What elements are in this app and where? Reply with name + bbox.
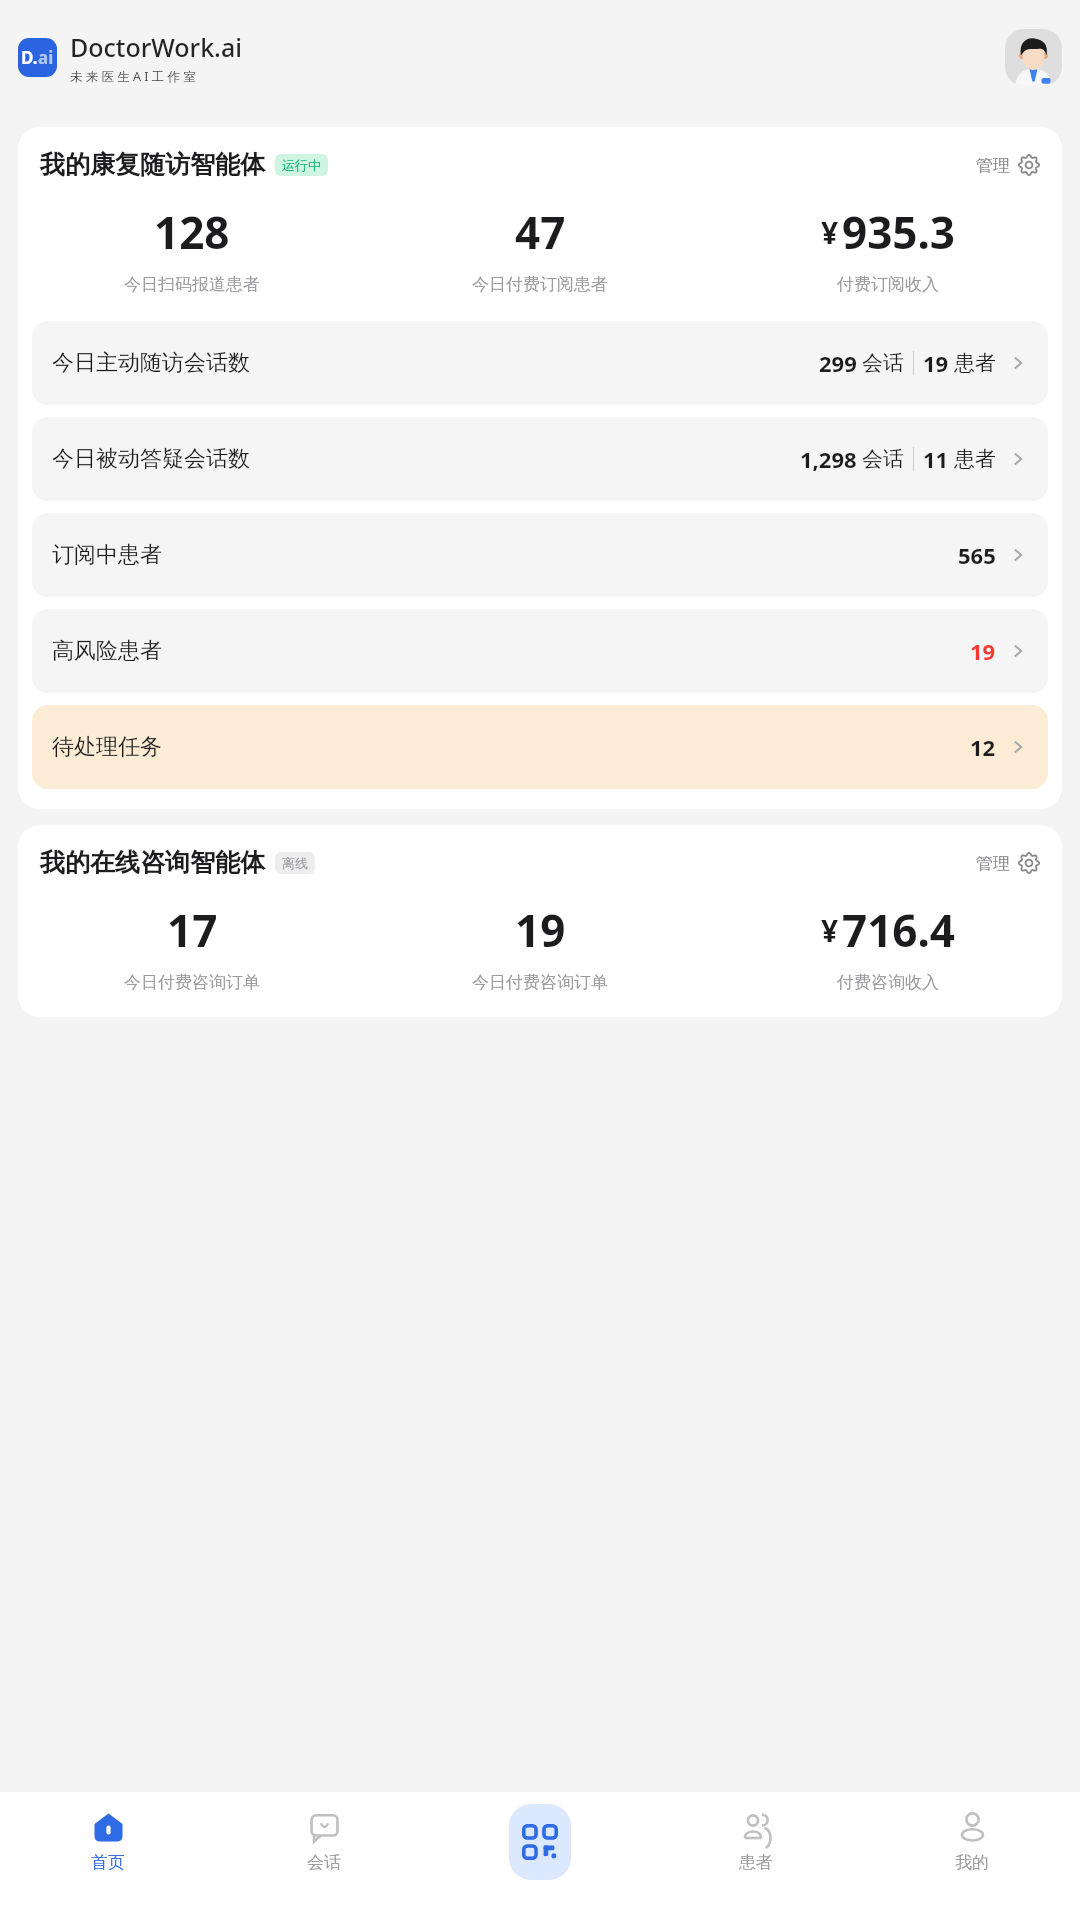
staticText: 19 xyxy=(515,900,566,960)
staticText: 待处理任务 xyxy=(52,733,162,761)
button[interactable]: 待处理任务 xyxy=(32,705,1048,789)
staticText: 我的在线咨询智能体 xyxy=(40,847,265,878)
staticText: 运行中 xyxy=(282,157,321,173)
staticText: 今日主动随访会话数 xyxy=(52,349,250,377)
staticText: 今日付费订阅患者 xyxy=(472,274,608,295)
staticText: 11 xyxy=(923,444,949,474)
staticText: DoctorWork.ai xyxy=(70,30,242,64)
button[interactable]: 今日主动随访会话数 xyxy=(32,321,1048,405)
staticText: 今日付费咨询订单 xyxy=(472,972,608,993)
staticText: 管理 xyxy=(976,155,1010,176)
staticText: 128 xyxy=(154,202,230,262)
staticText: ¥ xyxy=(821,910,839,951)
button[interactable]: 我的 xyxy=(864,1804,1080,1920)
staticText: 299 xyxy=(819,348,857,378)
staticText: 患者 xyxy=(739,1852,773,1873)
staticText: 会话 xyxy=(862,350,904,376)
staticText: 付费订阅收入 xyxy=(837,274,939,295)
staticText: 935.3 xyxy=(842,202,956,262)
staticText: 12 xyxy=(970,732,996,762)
button[interactable]: 管理 xyxy=(976,852,1040,874)
staticText: D. xyxy=(21,46,38,69)
staticText: 我的康复随访智能体 xyxy=(40,149,265,180)
staticText: 今日付费咨询订单 xyxy=(124,972,260,993)
staticText: 未 来 医 生 A I 工 作 室 xyxy=(70,68,196,85)
staticText: 716.4 xyxy=(842,900,956,960)
staticText: 今日被动答疑会话数 xyxy=(52,445,250,473)
staticText: 患者 xyxy=(954,446,996,472)
staticText: 会话 xyxy=(862,446,904,472)
staticText: 今日扫码报道患者 xyxy=(124,274,260,295)
button[interactable]: 首页 xyxy=(0,1804,216,1920)
staticText: 首页 xyxy=(91,1852,125,1873)
staticText: 19 xyxy=(923,348,949,378)
staticText: 17 xyxy=(167,900,218,960)
staticText: ai xyxy=(38,46,54,69)
staticText: 患者 xyxy=(954,350,996,376)
button[interactable]: 会话 xyxy=(216,1804,432,1920)
button[interactable]: 订阅中患者 xyxy=(32,513,1048,597)
button[interactable]: 高风险患者 xyxy=(32,609,1048,693)
button[interactable]: 今日被动答疑会话数 xyxy=(32,417,1048,501)
button[interactable]: Scan QR code xyxy=(509,1804,571,1880)
button[interactable]: 管理 xyxy=(976,154,1040,176)
staticText: 离线 xyxy=(282,855,308,871)
button[interactable]: D. xyxy=(18,30,242,85)
staticText: 565 xyxy=(958,540,996,570)
button[interactable]: 患者 xyxy=(648,1804,864,1920)
staticText: 管理 xyxy=(976,853,1010,874)
staticText: 会话 xyxy=(307,1852,341,1873)
staticText: 我的 xyxy=(955,1852,989,1873)
staticText: 19 xyxy=(970,636,996,666)
staticText: 1,298 xyxy=(800,444,857,474)
staticText: 47 xyxy=(515,202,566,262)
staticText: 订阅中患者 xyxy=(52,541,162,569)
staticText: 高风险患者 xyxy=(52,637,162,665)
staticText: 付费咨询收入 xyxy=(837,972,939,993)
staticText: ¥ xyxy=(821,212,839,253)
button[interactable]: Profile xyxy=(1005,29,1062,86)
